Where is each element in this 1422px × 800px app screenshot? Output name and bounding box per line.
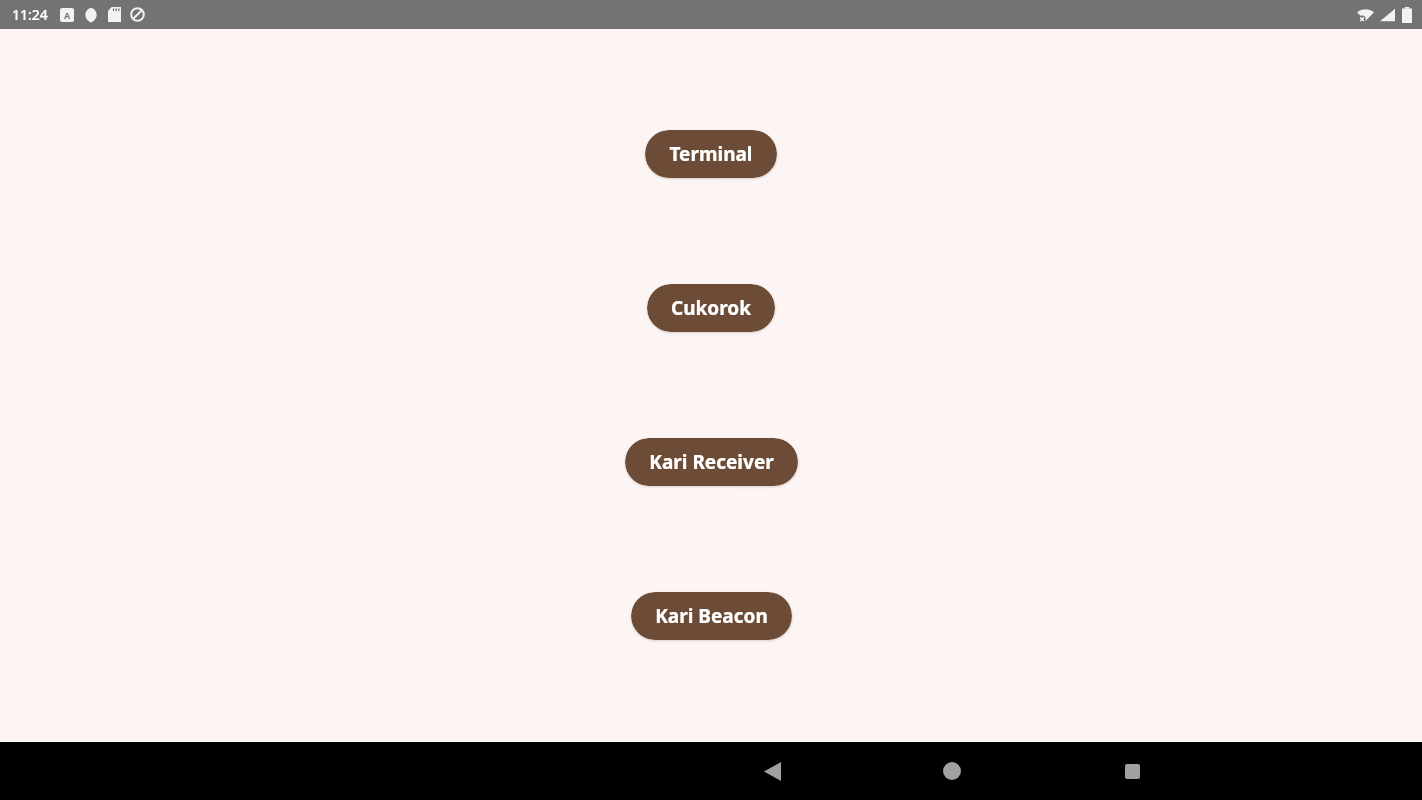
button[interactable]: Kari Beacon [631, 592, 792, 640]
button[interactable]: Recent apps [1104, 743, 1160, 799]
staticText: Kari Receiver [649, 449, 774, 475]
staticText: A [64, 9, 71, 21]
staticText: Kari Beacon [655, 603, 768, 629]
staticText: Terminal [669, 141, 753, 167]
staticText: 11:24 [12, 5, 48, 24]
button[interactable]: Home [924, 743, 980, 799]
button[interactable]: Terminal [645, 130, 777, 178]
button[interactable]: Back [744, 743, 800, 799]
button[interactable]: Cukorok [647, 284, 775, 332]
button[interactable]: Kari Receiver [625, 438, 798, 486]
staticText: Cukorok [671, 295, 751, 321]
